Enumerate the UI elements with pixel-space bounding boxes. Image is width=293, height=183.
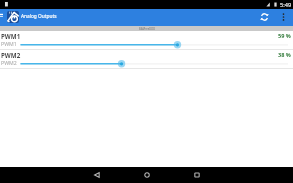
button[interactable]: Home bbox=[122, 167, 172, 183]
staticText: 38 % bbox=[278, 51, 291, 59]
button[interactable]: Back bbox=[72, 167, 122, 183]
button[interactable]: PWM2 bbox=[0, 50, 293, 69]
staticText: 5:49 bbox=[280, 1, 292, 9]
staticText: PWM1 bbox=[1, 32, 21, 40]
button[interactable]: PWM1 bbox=[0, 31, 293, 50]
staticText: PWM2 bbox=[1, 59, 17, 66]
staticText: PWM1 bbox=[1, 40, 17, 47]
staticText: PWM2 bbox=[1, 51, 21, 59]
staticText: Analog Outputs bbox=[21, 13, 57, 20]
staticText: 59 % bbox=[278, 32, 291, 40]
button[interactable]: Open navigation drawer bbox=[0, 9, 3, 26]
button[interactable]: Recent apps bbox=[172, 167, 222, 183]
staticText: B4AFreeIOIO bbox=[139, 27, 155, 31]
button[interactable]: More options bbox=[277, 9, 290, 26]
button[interactable]: Refresh bbox=[254, 9, 274, 26]
